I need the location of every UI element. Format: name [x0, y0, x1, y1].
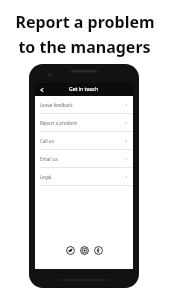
button[interactable]: Legal: [35, 168, 133, 185]
button[interactable]: Report a problem: [35, 114, 133, 131]
staticText: Leave feedback: [40, 102, 73, 108]
button[interactable]: Call us: [35, 132, 133, 149]
button[interactable]: Instagram: [80, 246, 89, 255]
button[interactable]: Email us: [35, 150, 133, 167]
staticText: Report a problem: [15, 11, 155, 33]
button[interactable]: Twitter: [66, 246, 75, 255]
staticText: Legal: [40, 174, 52, 180]
button[interactable]: Facebook: [94, 246, 103, 255]
staticText: to the managers: [18, 36, 151, 58]
button[interactable]: Back: [35, 83, 48, 96]
button[interactable]: Leave feedback: [35, 96, 133, 113]
staticText: Report a problem: [40, 120, 78, 126]
staticText: Get in touch: [69, 86, 99, 93]
staticText: Email us: [40, 156, 58, 162]
staticText: Call us: [40, 138, 54, 144]
